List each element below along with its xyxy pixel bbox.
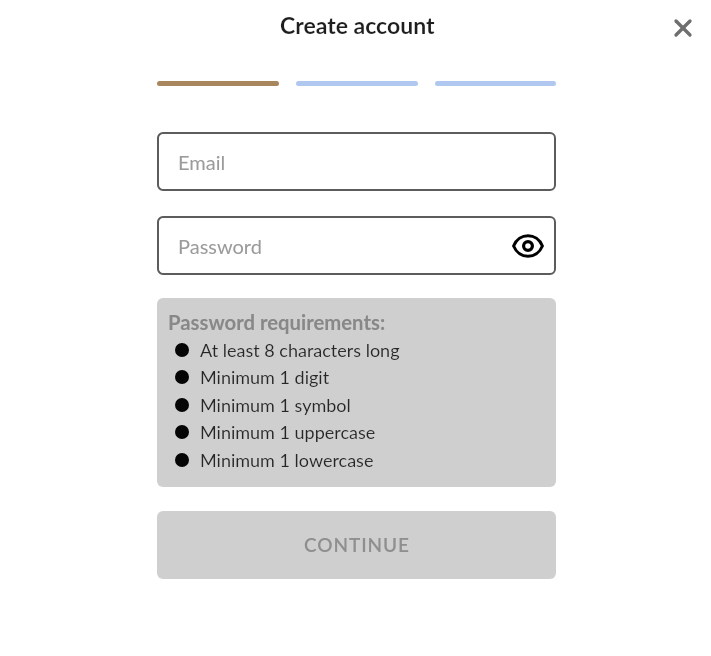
staticText: Minimum 1 lowercase bbox=[200, 449, 374, 471]
staticText: Password bbox=[178, 234, 262, 258]
staticText: CONTINUE bbox=[304, 533, 410, 556]
button[interactable]: Email bbox=[157, 132, 556, 191]
staticText: At least 8 characters long bbox=[200, 339, 400, 361]
button[interactable]: CONTINUE bbox=[157, 511, 556, 579]
staticText: Create account bbox=[280, 11, 435, 39]
staticText: Minimum 1 uppercase bbox=[200, 421, 376, 443]
staticText: Email bbox=[178, 150, 226, 174]
staticText: Minimum 1 symbol bbox=[200, 394, 351, 416]
staticText: Minimum 1 digit bbox=[200, 366, 330, 388]
staticText: Password requirements: bbox=[168, 310, 386, 334]
button[interactable]: Password bbox=[157, 216, 556, 275]
button[interactable]: Show password bbox=[506, 224, 550, 268]
button[interactable]: Close bbox=[661, 6, 705, 50]
